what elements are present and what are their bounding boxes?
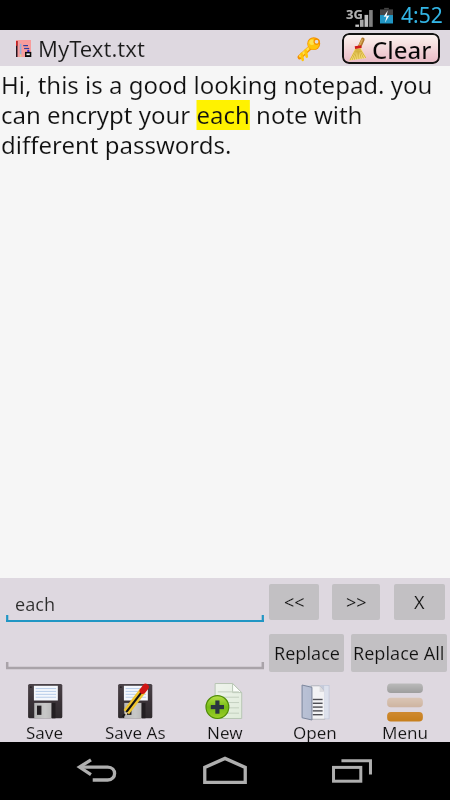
staticText: << xyxy=(284,590,305,615)
staticText: Menu xyxy=(382,721,429,742)
button[interactable]: Clear xyxy=(342,33,440,64)
staticText: Replace All xyxy=(353,641,445,666)
staticText: 4:52 xyxy=(401,1,443,30)
staticText: MyText.txt xyxy=(38,33,145,63)
staticText: each xyxy=(15,592,56,617)
staticText: >> xyxy=(346,590,367,615)
staticText: Save As xyxy=(105,721,166,742)
staticText: X xyxy=(414,590,425,615)
button[interactable]: Replace xyxy=(269,634,344,672)
button[interactable]: Recent apps xyxy=(323,742,381,800)
button[interactable]: Open xyxy=(270,674,360,742)
button[interactable]: X xyxy=(394,584,445,620)
button[interactable]: Back xyxy=(69,742,127,800)
button[interactable]: Save xyxy=(0,674,90,742)
staticText: Clear xyxy=(372,33,432,64)
button[interactable]: >> xyxy=(332,584,380,620)
button[interactable]: New xyxy=(180,674,270,742)
button[interactable] xyxy=(6,630,264,668)
staticText: New xyxy=(207,721,243,742)
staticText: 3G xyxy=(346,5,363,23)
button[interactable]: Replace All xyxy=(351,634,447,672)
button[interactable]: Set password xyxy=(293,33,323,63)
button[interactable]: each xyxy=(6,582,264,622)
button[interactable]: Save As xyxy=(90,674,180,742)
staticText: Replace xyxy=(274,641,340,666)
button[interactable]: Menu xyxy=(360,674,450,742)
staticText: Open xyxy=(293,721,337,742)
button[interactable]: Home xyxy=(196,742,254,800)
button[interactable]: << xyxy=(269,584,319,620)
staticText: Hi, this is a good looking notepad. you … xyxy=(1,68,442,161)
staticText: Save xyxy=(26,721,64,742)
